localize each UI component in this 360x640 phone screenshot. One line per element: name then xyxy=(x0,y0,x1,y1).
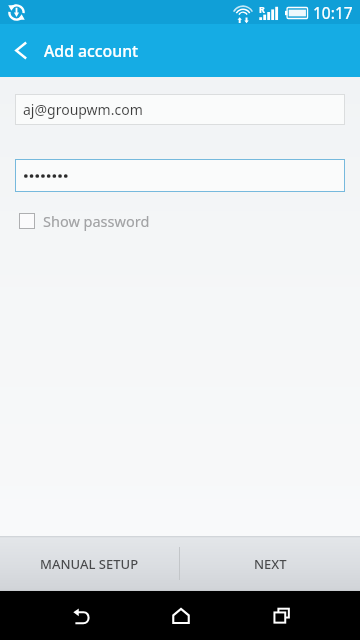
staticText: R xyxy=(259,3,265,15)
button[interactable]: Home xyxy=(154,591,208,640)
staticText: Add account xyxy=(44,40,139,62)
button[interactable]: Back xyxy=(0,24,42,77)
staticText: aj@groupwm.com xyxy=(23,100,143,119)
staticText: 10:17 xyxy=(313,2,353,23)
button[interactable]: NEXT xyxy=(180,536,360,591)
staticText: NEXT xyxy=(254,555,287,573)
button[interactable]: Recent apps xyxy=(255,591,309,640)
staticText: Show password xyxy=(43,211,150,231)
button[interactable]: MANUAL SETUP xyxy=(0,536,179,591)
button[interactable]: Back xyxy=(54,591,108,640)
button[interactable]: aj@groupwm.com xyxy=(15,94,345,125)
button[interactable]: Show password xyxy=(19,211,150,231)
button[interactable] xyxy=(15,159,345,192)
staticText: MANUAL SETUP xyxy=(40,555,139,573)
